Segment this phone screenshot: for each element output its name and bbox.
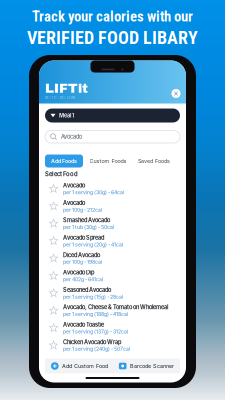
staticText: per 100g - 198cal <box>63 259 102 265</box>
button[interactable]: Add Foods <box>45 154 83 167</box>
button[interactable]: Add Custom Food <box>47 358 112 373</box>
button[interactable]: Avocado, Cheese & Tomato on Wholemeal <box>45 302 180 319</box>
button[interactable]: Meal 1 <box>45 108 180 122</box>
staticText: Avocado Toastie <box>63 321 104 328</box>
staticText: Select Food <box>45 170 78 178</box>
staticText: Custom Foods <box>89 158 126 164</box>
staticText: Meal 1 <box>59 112 74 119</box>
staticText: Avocado <box>63 199 85 206</box>
staticText: Avocado Dip <box>63 269 94 276</box>
staticText: per 1 serving (137g) - 312cal <box>63 328 128 335</box>
button[interactable]: Avocado Spread <box>45 232 180 250</box>
staticText: Smashed Avocado <box>63 217 110 224</box>
staticText: per 1 serving (30g) - 64cal <box>63 189 124 195</box>
button[interactable]: Seasoned Avocado <box>45 284 180 302</box>
button[interactable]: Saved Foods <box>133 154 175 167</box>
staticText: GET FIT - GET LEAN <box>45 96 75 99</box>
button[interactable]: Custom Foods <box>83 154 133 167</box>
staticText: per 100g - 212cal <box>63 207 102 213</box>
button[interactable]: Close <box>170 87 182 99</box>
staticText: Chicken Avocado Wrap <box>63 339 121 345</box>
staticText: Avocado <box>61 133 82 140</box>
staticText: Avocado <box>63 182 85 189</box>
staticText: Avocado, Cheese & Tomato on Wholemeal <box>63 304 168 311</box>
button[interactable]: Avocado <box>45 180 180 197</box>
staticText: per 402g - 641cal <box>63 276 103 282</box>
staticText: Add Custom Food <box>62 363 108 369</box>
staticText: Add Foods <box>51 158 77 164</box>
button[interactable]: Avocado Dip <box>45 267 180 284</box>
staticText: per 1 serving (240g) - 507cal <box>63 346 130 352</box>
staticText: Barcode Scanner <box>130 363 174 369</box>
button[interactable]: Avocado Toastie <box>45 319 180 337</box>
staticText: Seasoned Avocado <box>63 286 111 293</box>
staticText: Track your calories with our <box>32 8 193 25</box>
button[interactable]: Avocado <box>45 130 180 143</box>
staticText: per 1 serving (188g) - 418cal <box>63 311 128 317</box>
staticText: Saved Foods <box>138 158 170 164</box>
staticText: per 1 tub (30g) - 50cal <box>63 224 114 230</box>
button[interactable]: Chicken Avocado Wrap <box>45 337 180 354</box>
staticText: LIFTit <box>45 81 88 96</box>
button[interactable]: Barcode Scanner <box>115 358 178 373</box>
button[interactable]: Diced Avocado <box>45 250 180 267</box>
staticText: Avocado Spread <box>63 234 104 241</box>
staticText: per 1 serving (20g) - 41cal <box>63 241 123 248</box>
button[interactable]: Avocado <box>45 197 180 215</box>
staticText: per 1 serving (15g) - 28cal <box>63 294 123 300</box>
staticText: VERIFIED FOOD LIBARY <box>27 27 198 48</box>
staticText: Diced Avocado <box>63 252 100 258</box>
button[interactable]: Smashed Avocado <box>45 215 180 232</box>
